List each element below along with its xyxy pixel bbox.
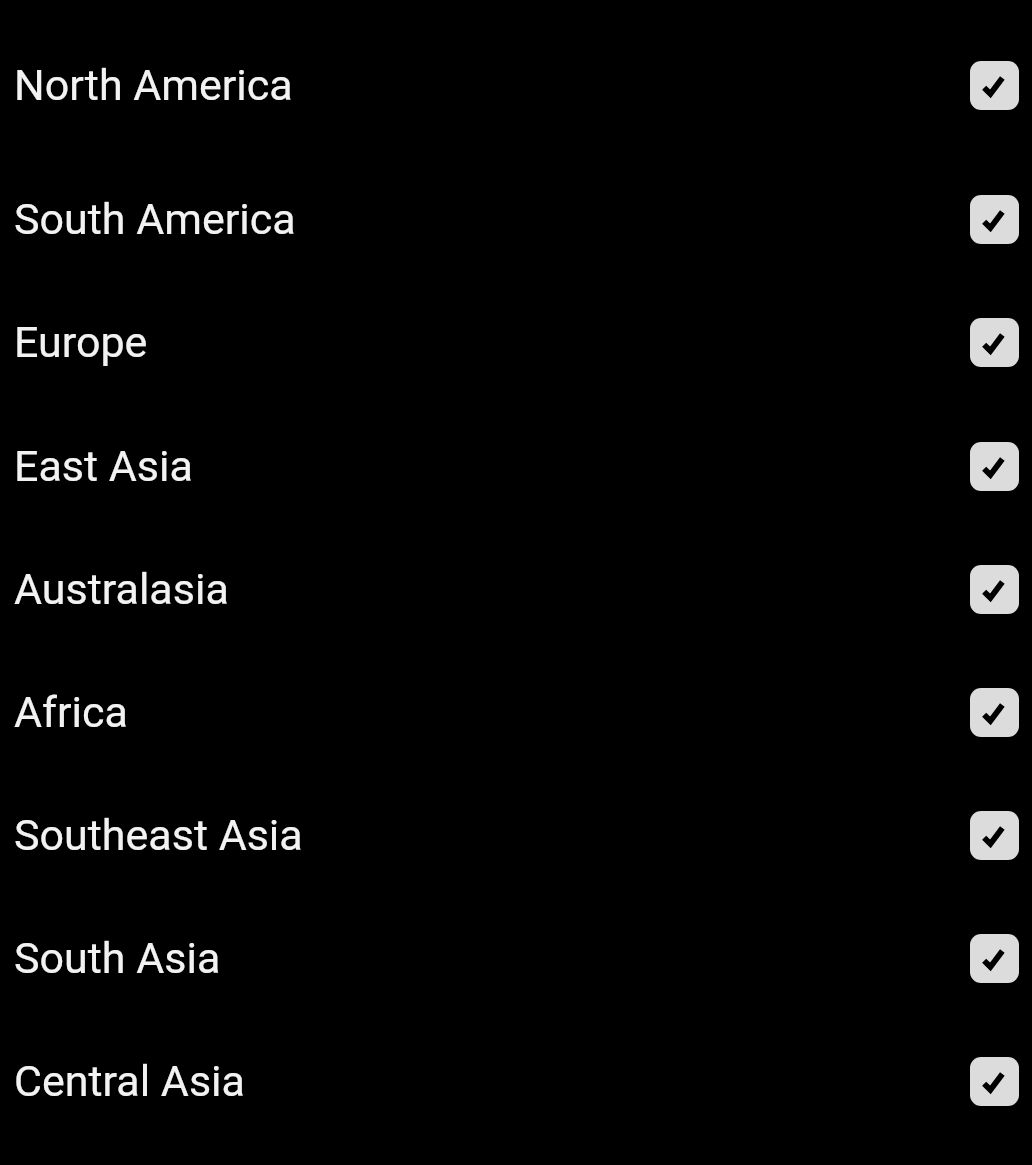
button[interactable]: Australasia — [0, 527, 1032, 651]
staticText: Central Asia — [14, 1056, 970, 1106]
button[interactable]: East Asia — [0, 404, 1032, 528]
button[interactable]: South Asia — [0, 896, 1032, 1020]
button[interactable]: North America — [0, 23, 1032, 147]
button[interactable]: South America, checked — [970, 195, 1019, 244]
button[interactable]: Central Asia, checked — [970, 1057, 1019, 1106]
button[interactable]: Australasia, checked — [970, 565, 1019, 614]
button[interactable]: Africa, checked — [970, 688, 1019, 737]
button[interactable]: South Asia, checked — [970, 934, 1019, 983]
staticText: Southeast Asia — [14, 810, 970, 860]
button[interactable]: Africa — [0, 650, 1032, 774]
button[interactable]: Southeast Asia, checked — [970, 811, 1019, 860]
staticText: Australasia — [14, 564, 970, 614]
staticText: Europe — [14, 317, 970, 367]
staticText: East Asia — [14, 441, 970, 491]
staticText: South America — [14, 194, 970, 244]
button[interactable]: North America, checked — [970, 61, 1019, 110]
button[interactable]: Europe — [0, 280, 1032, 404]
button[interactable]: Central Asia — [0, 1019, 1032, 1143]
button[interactable]: Southeast Asia — [0, 773, 1032, 897]
button[interactable]: South America — [0, 157, 1032, 281]
staticText: South Asia — [14, 933, 970, 983]
button[interactable]: Europe, checked — [970, 318, 1019, 367]
button[interactable]: East Asia, checked — [970, 442, 1019, 491]
staticText: North America — [14, 60, 970, 110]
staticText: Africa — [14, 687, 970, 737]
